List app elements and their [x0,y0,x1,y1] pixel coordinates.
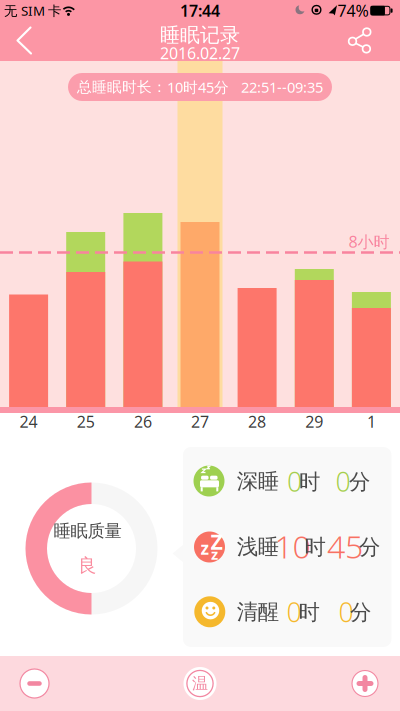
staticText: 74% [337,0,368,21]
staticText: 时 [298,599,319,625]
staticText: 22:51--09:35 [229,77,323,97]
staticText: 时 [304,534,325,560]
button[interactable] [352,670,378,696]
staticText: 26 [134,411,152,432]
staticText: 分 [350,599,371,625]
staticText: 10时45分 [167,77,229,97]
staticText: 45 [327,525,363,567]
staticText: 良 [78,554,97,577]
button[interactable]: 27 [178,410,222,432]
staticText: 27 [191,411,209,432]
staticText: 0 [287,464,302,499]
staticText: 分 [359,534,380,560]
button[interactable]: 1 [349,410,393,432]
staticText: 28 [248,411,266,432]
button[interactable] [20,669,49,698]
staticText: z [200,536,209,559]
staticText: 时 [299,469,320,495]
button[interactable]: 温 [183,667,216,700]
staticText: 浅睡 [237,534,279,560]
staticText: Z [210,527,222,556]
staticText: 10 [274,525,310,567]
staticText: 无 SIM 卡 [4,2,61,19]
staticText: 0 [338,594,353,630]
staticText: 总睡眠时长： [77,78,167,96]
staticText: 8小时 [348,231,389,252]
staticText: 29 [305,411,323,432]
staticText: 1 [367,411,376,432]
staticText: 深睡 [237,468,279,495]
staticText: 温 [192,674,208,693]
button[interactable]: 29 [292,410,336,432]
staticText: 清醒 [237,599,279,625]
button[interactable]: 28 [235,410,279,432]
staticText: 睡眠质量 [53,520,121,542]
staticText: 17:44 [180,0,220,21]
staticText: 25 [77,411,95,432]
button[interactable]: 25 [64,410,108,432]
staticText: 睡眠记录 [160,23,240,47]
staticText: 2016.02.27 [160,42,240,64]
button[interactable]: 总睡眠时长： [68,73,332,101]
button[interactable]: 26 [121,410,165,432]
staticText: 分 [349,469,370,495]
button[interactable] [0,0,400,711]
button[interactable]: 24 [7,410,51,432]
staticText: 0 [286,594,301,630]
staticText: z [211,544,218,564]
staticText: 24 [20,411,38,432]
staticText: 0 [335,464,350,499]
button[interactable] [0,0,400,711]
